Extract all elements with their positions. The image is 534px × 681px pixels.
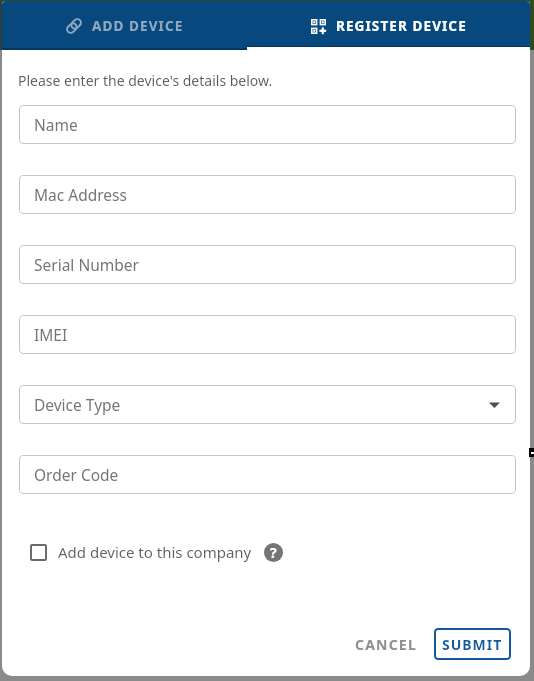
button[interactable]: Name [19, 105, 516, 144]
button[interactable]: Serial Number [19, 245, 516, 284]
button[interactable]: Order Code [19, 455, 516, 494]
staticText: REGISTER DEVICE [336, 17, 467, 35]
staticText: Add device to this company [58, 542, 252, 562]
staticText: SUBMIT [442, 635, 503, 654]
button[interactable]: IMEI [19, 315, 516, 354]
staticText: Please enter the device's details below. [18, 71, 273, 90]
staticText: Serial Number [34, 254, 139, 275]
button[interactable]: CANCEL [350, 629, 422, 659]
staticText: Name [34, 114, 78, 135]
button[interactable]: REGISTER DEVICE [247, 3, 530, 49]
button[interactable]: SUBMIT [434, 628, 511, 660]
button[interactable]: Mac Address [19, 175, 516, 214]
staticText: Device Type [34, 394, 121, 415]
button[interactable]: ADD DEVICE [2, 3, 247, 49]
button[interactable]: Device Type [19, 385, 516, 424]
staticText: Mac Address [34, 184, 127, 205]
staticText: Order Code [34, 464, 119, 485]
staticText: CANCEL [355, 635, 417, 654]
staticText: IMEI [34, 324, 68, 345]
staticText: ? [270, 543, 277, 562]
staticText: ADD DEVICE [92, 17, 184, 35]
button[interactable]: Add device to this company [30, 542, 283, 562]
